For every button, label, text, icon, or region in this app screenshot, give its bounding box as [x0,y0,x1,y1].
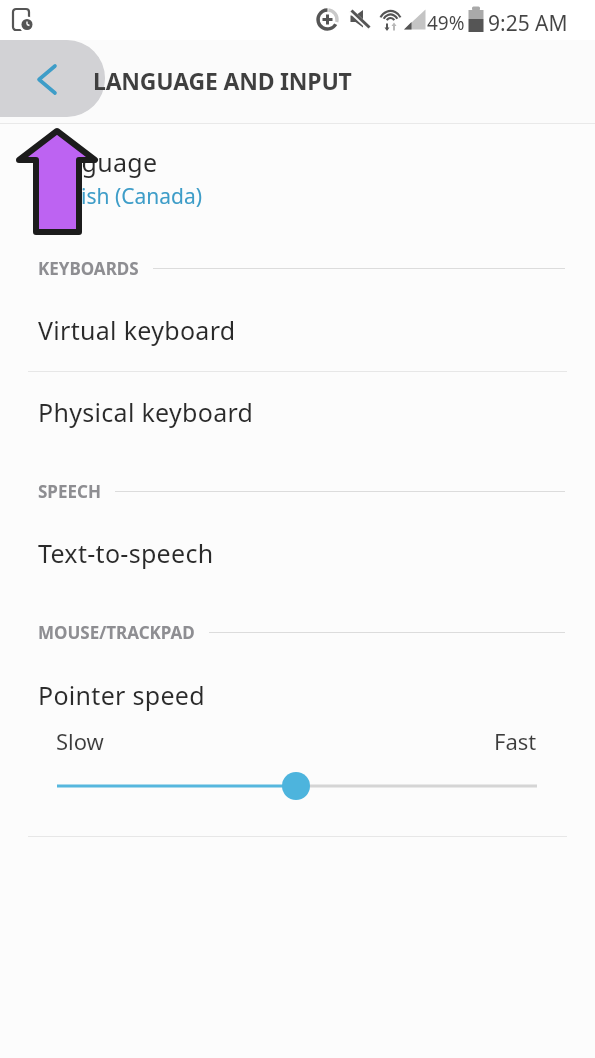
button[interactable]: Virtual keyboard [0,289,595,371]
staticText: Slow [56,726,104,756]
staticText: English (Canada) [38,182,203,211]
staticText: LANGUAGE AND INPUT [93,65,352,96]
button[interactable]: Pointer speed [0,654,595,736]
staticText: KEYBOARDS [38,257,139,280]
staticText: 49% [427,10,465,36]
staticText: Virtual keyboard [38,313,236,347]
staticText: Pointer speed [38,678,205,712]
staticText: 9:25 AM [488,9,568,38]
button[interactable]: Language [0,145,595,217]
staticText: Language [38,145,158,179]
button[interactable]: Physical keyboard [0,371,595,453]
staticText: Text-to-speech [38,536,214,570]
button[interactable]: Text-to-speech [0,512,595,594]
staticText: MOUSE/TRACKPAD [38,621,195,644]
staticText: SPEECH [38,480,101,503]
button[interactable] [40,766,555,806]
staticText: Physical keyboard [38,395,254,429]
button[interactable] [0,40,105,117]
staticText: Fast [494,726,537,756]
